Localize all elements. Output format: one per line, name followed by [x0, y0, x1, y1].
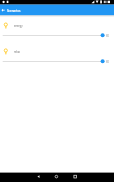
button[interactable] [0, 45, 114, 65]
button[interactable]: Navigate up [0, 5, 7, 16]
button[interactable]: Recent apps [70, 173, 81, 182]
staticText: relax [14, 50, 20, 54]
staticText: 80 [106, 34, 109, 38]
staticText: energy [14, 24, 23, 28]
button[interactable] [0, 19, 114, 39]
staticText: 80 [106, 60, 109, 64]
button[interactable]: Back [33, 173, 44, 182]
button[interactable]: Home [51, 173, 62, 182]
staticText: Scenarios [7, 9, 21, 13]
